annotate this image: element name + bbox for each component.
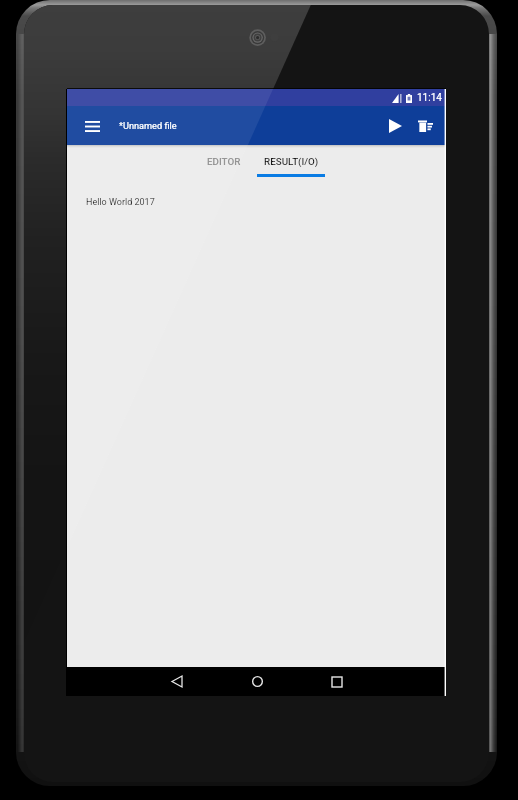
button[interactable]: Open navigation menu xyxy=(79,113,105,139)
button[interactable]: RESULT(I/O) xyxy=(257,145,325,177)
staticText: 11:14 xyxy=(417,92,442,104)
button[interactable]: Clear output xyxy=(410,111,440,141)
button[interactable]: EDITOR xyxy=(190,145,258,177)
button[interactable]: Back xyxy=(157,667,197,696)
staticText: RESULT(I/O) xyxy=(264,156,319,167)
staticText: *Unnamed file xyxy=(119,120,177,131)
button[interactable]: Home xyxy=(237,667,277,696)
staticText: Hello World 2017 xyxy=(86,197,155,208)
staticText: EDITOR xyxy=(207,156,241,167)
button[interactable]: Run xyxy=(380,111,410,141)
button[interactable]: Recent apps xyxy=(317,667,357,696)
